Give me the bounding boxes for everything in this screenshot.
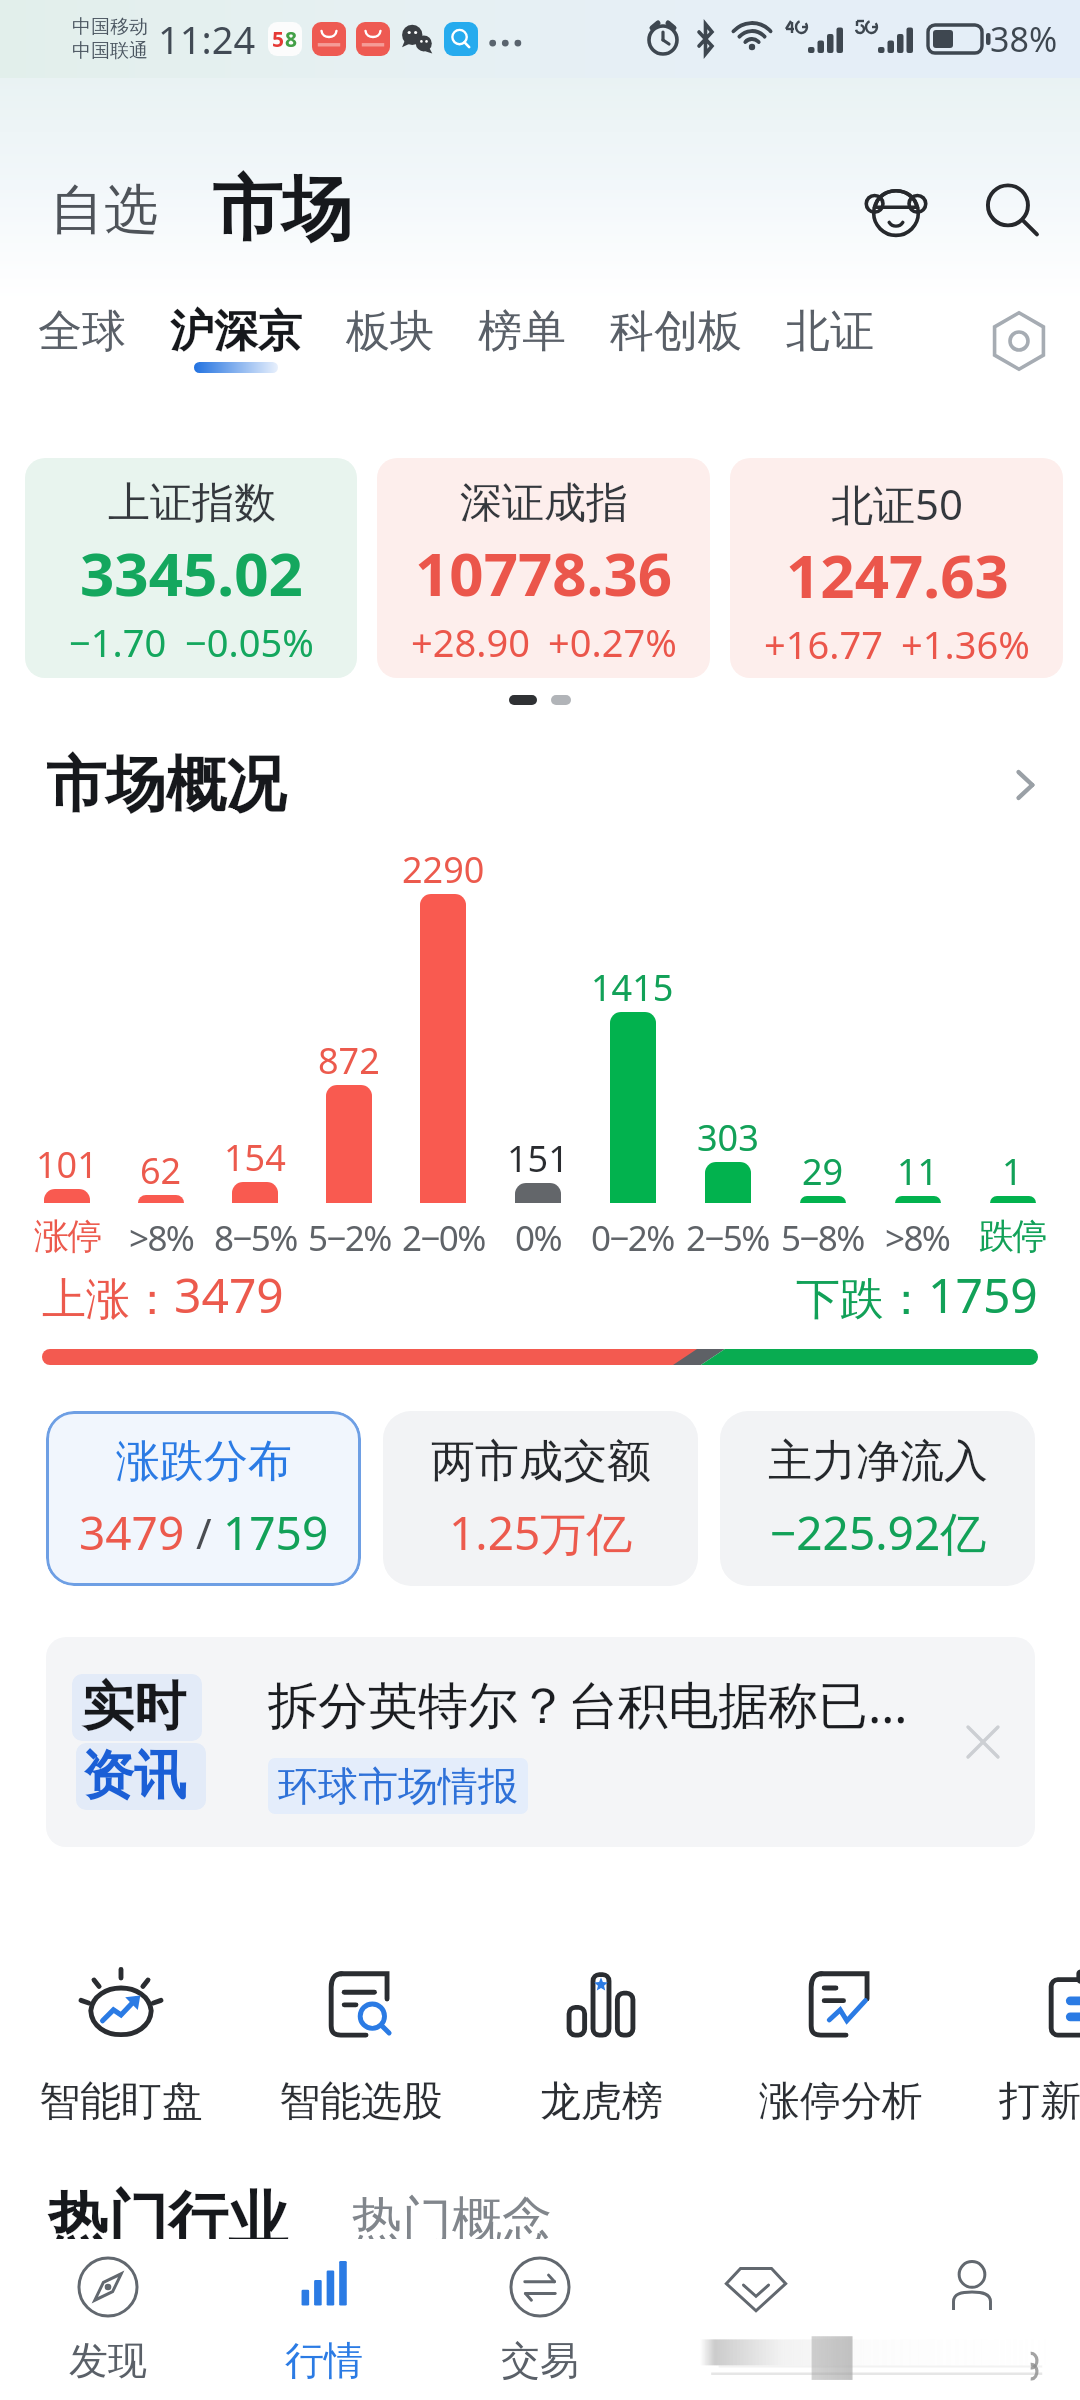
staticText: 市场概况 <box>46 747 286 823</box>
staticText: 自选 <box>50 176 158 244</box>
staticText: >8% <box>129 1214 194 1262</box>
button[interactable]: 板块 <box>324 300 456 400</box>
staticText: 龙虎榜 <box>540 2076 663 2128</box>
staticText: 872 <box>318 1036 380 1085</box>
staticText: −0.05% <box>185 616 314 668</box>
button[interactable]: 涨跌分布 <box>46 1411 361 1586</box>
button[interactable]: 北证 <box>764 300 896 400</box>
staticText: 8 <box>285 25 298 54</box>
staticText: 38% <box>990 16 1058 62</box>
button[interactable]: Close <box>947 1706 1019 1778</box>
staticText: 1247.63 <box>786 534 1009 616</box>
staticText: 1759 <box>223 1501 329 1564</box>
staticText: 行情 <box>285 2336 363 2385</box>
button[interactable]: 热门概念 <box>352 2189 552 2252</box>
staticText: 101 <box>36 1140 98 1189</box>
staticText: 3479 <box>79 1501 185 1564</box>
staticText: 涨停分析 <box>759 2076 923 2128</box>
staticText: 涨跌分布 <box>116 1434 292 1489</box>
staticText: 涨停 <box>34 1214 101 1258</box>
staticText: −1.70 <box>69 616 167 668</box>
button[interactable]: Settings <box>978 300 1060 382</box>
button[interactable]: Account <box>852 166 940 254</box>
staticText: / <box>185 1504 223 1561</box>
staticText: 市场 <box>212 166 352 254</box>
staticText: −225.92亿 <box>770 1501 987 1564</box>
button[interactable]: 两市成交额 <box>383 1411 698 1586</box>
staticText: 5−2% <box>308 1214 391 1262</box>
staticText: 1.25万亿 <box>449 1501 633 1564</box>
staticText: 中国联通 <box>72 39 148 63</box>
staticText: 板块 <box>346 304 434 359</box>
staticText: 主力净流入 <box>768 1434 988 1489</box>
button[interactable]: 交易 <box>432 2239 648 2400</box>
button[interactable]: 智能盯盘 <box>1 1962 241 2128</box>
button[interactable]: 实时 <box>46 1637 1035 1847</box>
staticText: 榜单 <box>478 304 566 359</box>
button[interactable]: 自选 <box>42 164 166 256</box>
button[interactable]: 涨停分析 <box>721 1962 961 2128</box>
staticText: 环球市场情报 <box>278 1761 518 1811</box>
staticText: 303 <box>697 1113 759 1162</box>
staticText: 2290 <box>402 845 485 894</box>
staticText: 3345.02 <box>80 532 303 614</box>
button[interactable]: 深证成指 <box>377 458 710 678</box>
staticText: +16.77 <box>764 618 883 670</box>
staticText: 我的 <box>933 2336 1011 2385</box>
staticText: 0−2% <box>591 1214 674 1262</box>
button[interactable]: 榜单 <box>456 300 588 400</box>
button[interactable]: 打新日历 <box>961 1962 1080 2128</box>
staticText: 发现 <box>69 2336 147 2385</box>
button[interactable]: 理财 <box>648 2239 864 2400</box>
staticText: 0% <box>515 1214 561 1262</box>
staticText: 中国移动 <box>72 15 148 39</box>
staticText: 11:24 <box>158 13 256 65</box>
staticText: 交易 <box>501 2336 579 2385</box>
button[interactable]: 发现 <box>0 2239 216 2400</box>
button[interactable]: 热门行业 <box>48 2182 288 2258</box>
button[interactable]: 我的 <box>864 2239 1080 2400</box>
staticText: 62 <box>140 1146 182 1195</box>
staticText: 下跌： <box>796 1272 928 1327</box>
staticText: +28.90 <box>411 616 530 668</box>
staticText: 29 <box>802 1147 844 1196</box>
staticText: 11 <box>897 1147 939 1196</box>
staticText: 3479 <box>174 1262 284 1327</box>
staticText: 热门概念 <box>352 2189 552 2252</box>
staticText: 2−5% <box>686 1214 769 1262</box>
staticText: 跌停 <box>979 1214 1046 1258</box>
button[interactable]: Search <box>968 166 1056 254</box>
staticText: 1 <box>1002 1147 1023 1196</box>
button[interactable]: 沪深京 <box>148 300 324 400</box>
staticText: 拆分英特尔？台积电据称已… <box>268 1670 908 1738</box>
staticText: >8% <box>885 1214 950 1262</box>
button[interactable]: 主力净流入 <box>720 1411 1035 1586</box>
button[interactable]: 全球 <box>16 300 148 400</box>
staticText: 资讯 <box>82 1743 186 1809</box>
button[interactable]: 北证50 <box>730 458 1063 678</box>
staticText: 科创板 <box>610 304 742 359</box>
staticText: 沪深京 <box>170 304 302 359</box>
staticText: 上证指数 <box>108 477 276 530</box>
staticText: 1415 <box>591 963 674 1012</box>
staticText: 5−8% <box>781 1214 864 1262</box>
button[interactable]: 市场 <box>206 156 358 264</box>
staticText: +0.27% <box>548 616 677 668</box>
button[interactable]: 行情 <box>216 2239 432 2400</box>
staticText: 两市成交额 <box>431 1434 651 1489</box>
staticText: 打新日历 <box>999 2076 1080 2128</box>
staticText: 热门行业 <box>48 2182 288 2258</box>
button[interactable]: 智能选股 <box>241 1962 481 2128</box>
button[interactable]: 科创板 <box>588 300 764 400</box>
staticText: 10778.36 <box>415 532 673 614</box>
button[interactable]: 市场概况 <box>0 738 1080 832</box>
button[interactable]: 上证指数 <box>25 458 357 678</box>
staticText: 8−5% <box>214 1214 297 1262</box>
staticText: 154 <box>224 1133 286 1182</box>
staticText: 1759 <box>928 1262 1038 1327</box>
button[interactable]: 龙虎榜 <box>481 1962 721 2128</box>
staticText: 北证50 <box>831 475 964 532</box>
staticText: 智能盯盘 <box>39 2076 203 2128</box>
staticText: 实时 <box>82 1674 186 1740</box>
staticText: +1.36% <box>901 618 1030 670</box>
